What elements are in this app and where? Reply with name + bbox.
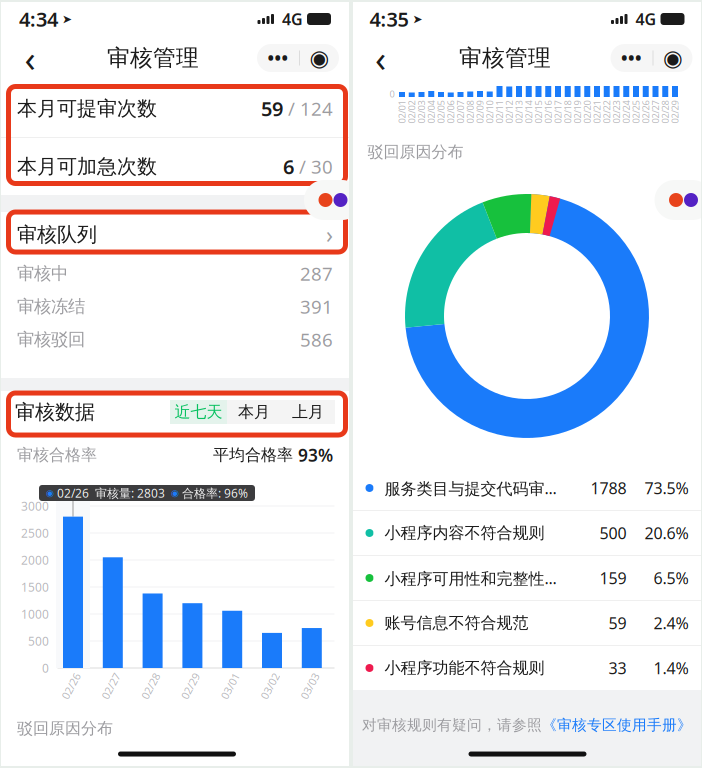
button[interactable]: 返回: [11, 39, 49, 77]
staticText: ◉: [46, 488, 54, 498]
staticText: 02/28: [137, 679, 165, 693]
button[interactable]: 返回: [361, 39, 399, 77]
button[interactable]: 关闭: [653, 44, 692, 72]
staticText: 30: [311, 154, 333, 179]
staticText: 02/19: [566, 106, 589, 118]
button[interactable]: 审核冻结: [1, 290, 349, 323]
button[interactable]: 本月可加急次数: [1, 138, 349, 195]
staticText: 02/22: [595, 106, 618, 118]
staticText: 287: [300, 261, 333, 286]
button[interactable]: 关闭: [300, 44, 339, 72]
staticText: 小程序可用性和完整性不符...: [384, 567, 556, 589]
staticText: ◉: [309, 45, 329, 71]
staticText: 4:35: [369, 6, 408, 32]
staticText: 4:34: [19, 6, 58, 32]
staticText: /: [283, 96, 300, 121]
staticText: 本月: [238, 402, 270, 422]
staticText: 02/26: [57, 679, 85, 693]
button[interactable]: 更多: [610, 44, 652, 72]
staticText: 59: [608, 612, 626, 634]
staticText: 对审核规则有疑问，请参照: [362, 716, 542, 734]
button[interactable]: 小程序内容不符合规则: [351, 511, 702, 555]
staticText: ◉: [663, 45, 683, 71]
staticText: 02/25: [624, 106, 647, 118]
staticText: 02/29: [663, 106, 686, 118]
staticText: ‹: [375, 34, 386, 82]
button[interactable]: 更多: [257, 44, 299, 72]
staticText: 02/27: [644, 106, 667, 118]
staticText: 2.4%: [653, 612, 688, 634]
button[interactable]: 上月: [281, 400, 335, 424]
staticText: 《审核专区使用手册》: [542, 716, 692, 734]
staticText: 02/04: [420, 106, 443, 118]
button[interactable]: 账号信息不符合规范: [351, 601, 702, 645]
button[interactable]: 审核驳回: [1, 323, 349, 356]
staticText: 02/28: [654, 106, 677, 118]
staticText: 02/18: [556, 106, 579, 118]
staticText: 500: [28, 633, 49, 649]
staticText: 03/01: [216, 679, 244, 693]
staticText: 账号信息不符合规范: [384, 613, 528, 633]
staticText: 02/27: [97, 679, 125, 693]
staticText: 586: [300, 327, 333, 352]
staticText: 4G: [627, 8, 660, 30]
staticText: 02/03: [410, 106, 433, 118]
staticText: 0: [389, 88, 394, 100]
button[interactable]: 本月可提审次数: [1, 80, 349, 137]
staticText: 1.4%: [653, 657, 688, 679]
staticText: 审核队列: [17, 222, 97, 247]
staticText: 02/12: [498, 106, 521, 118]
staticText: ➤: [58, 12, 72, 26]
staticText: 02/08: [459, 106, 482, 118]
staticText: 本月可提审次数: [17, 96, 157, 121]
staticText: 02/21: [585, 106, 608, 118]
staticText: 审核管理: [107, 44, 199, 72]
button[interactable]: 小程序可用性和完整性不符...: [351, 556, 702, 600]
staticText: 6.5%: [653, 567, 688, 589]
staticText: 02/06: [439, 106, 462, 118]
staticText: 02/13: [507, 106, 530, 118]
button[interactable]: 本月: [227, 400, 281, 424]
staticText: 02/17: [546, 106, 569, 118]
staticText: 平均合格率: [213, 445, 298, 465]
staticText: 02/24: [615, 106, 638, 118]
button[interactable]: 审核队列: [1, 212, 349, 257]
staticText: 1000: [21, 606, 49, 622]
staticText: 20.6%: [644, 522, 688, 544]
staticText: 近七天: [174, 402, 222, 422]
staticText: 73.5%: [644, 477, 688, 499]
staticText: 93%: [298, 443, 333, 466]
staticText: 本月可加急次数: [17, 154, 157, 179]
staticText: 审核合格率: [17, 445, 97, 465]
staticText: 上月: [292, 402, 324, 422]
button[interactable]: 审核中: [1, 257, 349, 290]
staticText: 02/11: [488, 106, 511, 118]
staticText: 02/26: [634, 106, 657, 118]
staticText: 02/15: [527, 106, 550, 118]
staticText: 02/14: [517, 106, 540, 118]
staticText: 02/02: [400, 106, 423, 118]
staticText: 合格率: 96%: [182, 485, 248, 501]
button[interactable]: 客服: [654, 180, 702, 220]
staticText: 02/05: [429, 106, 452, 118]
staticText: 03/02: [256, 679, 284, 693]
staticText: 391: [300, 294, 333, 319]
staticText: •••: [267, 46, 288, 69]
button[interactable]: 近七天: [170, 400, 227, 424]
staticText: 审核管理: [459, 44, 551, 72]
staticText: 1788: [590, 477, 626, 499]
staticText: /: [294, 154, 311, 179]
staticText: 02/07: [449, 106, 472, 118]
staticText: 审核驳回: [17, 329, 85, 350]
staticText: ➤: [408, 12, 422, 26]
staticText: 驳回原因分布: [367, 142, 463, 162]
staticText: 03/03: [296, 679, 324, 693]
staticText: 3000: [21, 498, 49, 514]
button[interactable]: 服务类目与提交代码审核时...: [351, 466, 702, 510]
staticText: ◉: [168, 488, 179, 498]
staticText: 2000: [21, 552, 49, 568]
staticText: ›: [326, 219, 333, 249]
button[interactable]: 小程序功能不符合规则: [351, 646, 702, 690]
button[interactable]: 客服: [304, 180, 362, 220]
button[interactable]: 《审核专区使用手册》: [542, 716, 692, 734]
